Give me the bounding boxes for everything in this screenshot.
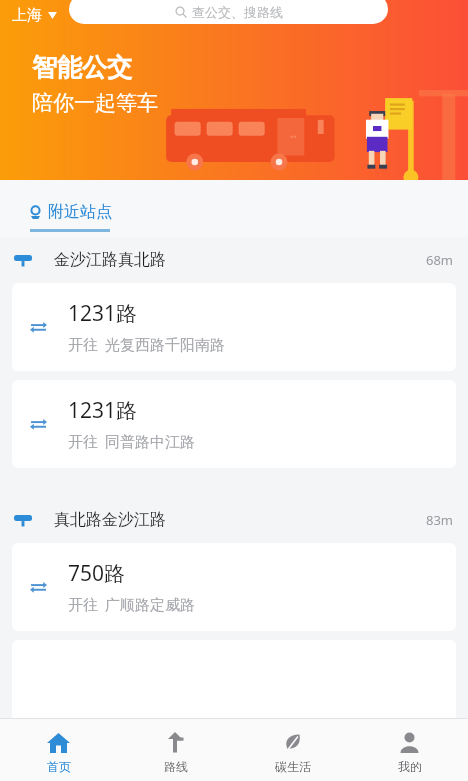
staticText: 广顺路定威路 [105,596,195,615]
staticText: 开往 [68,433,98,452]
staticText: 光复西路千阳南路 [105,336,225,355]
button[interactable]: 碳生活 [234,719,351,781]
button[interactable]: 查公交、搜路线 [69,0,388,24]
staticText: 查公交、搜路线 [192,4,283,20]
staticText: 83m [426,511,454,529]
staticText: 同普路中江路 [105,433,195,452]
other: 首页 [46,730,71,755]
staticText: 750路 [68,559,126,588]
other: 路线 [163,730,188,755]
other: 我的 [397,730,422,755]
button[interactable]: 附近站点 [26,202,114,222]
staticText: 开往 [68,596,98,615]
staticText: 1231路 [68,299,138,328]
staticText: 金沙江路真北路 [54,250,166,270]
staticText: 真北路金沙江路 [54,510,166,530]
staticText: 陪你一起等车 [32,90,158,116]
staticText: 上海 [12,6,42,25]
other: 碳生活 [280,730,305,755]
staticText: 碳生活 [275,759,311,774]
button[interactable]: 真北路金沙江路 [0,497,468,543]
button[interactable]: 1231路 [12,283,456,371]
button[interactable]: 750路 [12,543,456,631]
staticText: 68m [426,251,454,269]
button[interactable]: 上海 [10,4,59,27]
staticText: 智能公交 [32,52,132,83]
staticText: 首页 [47,759,71,774]
staticText: 1231路 [68,396,138,425]
button[interactable]: 我的 [351,719,468,781]
staticText: 附近站点 [48,202,112,222]
button[interactable]: 金沙江路真北路 [0,237,468,283]
button[interactable]: 1231路 [12,380,456,468]
button[interactable]: 首页 [0,719,117,781]
staticText: 路线 [164,759,188,774]
staticText: 我的 [398,759,422,774]
staticText: 开往 [68,336,98,355]
button[interactable]: 路线 [117,719,234,781]
